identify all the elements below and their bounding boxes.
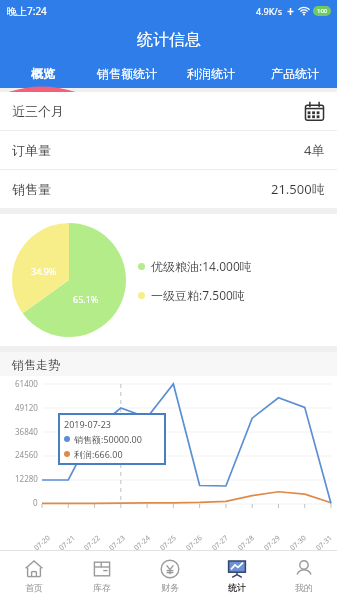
- staticText: 近三个月: [12, 103, 64, 119]
- staticText: 61400: [15, 378, 38, 389]
- button[interactable]: 近三个月: [0, 92, 337, 130]
- staticText: 销售走势: [12, 357, 60, 372]
- button[interactable]: 首页: [0, 551, 68, 600]
- staticText: 07-27: [210, 533, 231, 553]
- staticText: 07-24: [132, 533, 153, 553]
- staticText: 统计: [228, 582, 246, 593]
- staticText: 07-26: [184, 533, 205, 553]
- button[interactable]: 订单量: [0, 131, 337, 169]
- button[interactable]: 概览: [0, 58, 85, 88]
- staticText: 首页: [25, 582, 43, 593]
- staticText: 库存: [93, 582, 111, 593]
- staticText: 07-22: [82, 533, 103, 553]
- button[interactable]: 统计: [203, 551, 270, 600]
- button[interactable]: 财务: [136, 551, 203, 600]
- staticText: 2019-07-23: [64, 418, 111, 430]
- button[interactable]: 我的: [270, 551, 337, 600]
- staticText: 100: [317, 7, 328, 15]
- staticText: 24560: [15, 449, 38, 460]
- staticText: 销售额:50000.00: [74, 433, 142, 445]
- staticText: 我的: [295, 582, 313, 593]
- staticText: 4.9K/s: [256, 5, 282, 17]
- button[interactable]: 库存: [68, 551, 136, 600]
- staticText: 统计信息: [137, 30, 201, 50]
- staticText: 07-28: [236, 533, 257, 553]
- staticText: 概览: [31, 66, 55, 81]
- staticText: 49120: [15, 402, 38, 413]
- staticText: 36840: [15, 426, 38, 437]
- staticText: 销售额统计: [97, 66, 157, 81]
- staticText: 65.1%: [73, 293, 99, 305]
- staticText: 07-30: [288, 533, 309, 553]
- button[interactable]: 销售量: [0, 170, 337, 208]
- staticText: 0: [33, 497, 38, 508]
- staticText: 07-21: [57, 533, 78, 553]
- staticText: 销售量: [12, 181, 51, 197]
- button[interactable]: Select date range: [304, 101, 325, 122]
- button[interactable]: 产品统计: [253, 58, 337, 88]
- staticText: 利润:666.00: [74, 448, 123, 460]
- staticText: 优级粮油:14.000吨: [151, 258, 252, 274]
- staticText: 07-20: [32, 533, 53, 553]
- staticText: 34.9%: [31, 265, 57, 277]
- button[interactable]: 利润统计: [169, 58, 253, 88]
- staticText: 21.500吨: [271, 180, 325, 198]
- staticText: 利润统计: [187, 66, 235, 81]
- staticText: 07-25: [158, 533, 179, 553]
- staticText: 07-31: [314, 533, 335, 553]
- staticText: 产品统计: [271, 66, 319, 81]
- staticText: 订单量: [12, 142, 51, 158]
- staticText: 一级豆粕:7.500吨: [151, 287, 245, 303]
- staticText: 12280: [15, 473, 38, 484]
- button[interactable]: 销售额统计: [85, 58, 169, 88]
- staticText: 07-29: [262, 533, 283, 553]
- staticText: 07-23: [107, 533, 128, 553]
- staticText: 4单: [304, 141, 325, 159]
- staticText: 晚上7:24: [7, 4, 47, 18]
- staticText: 财务: [161, 582, 179, 593]
